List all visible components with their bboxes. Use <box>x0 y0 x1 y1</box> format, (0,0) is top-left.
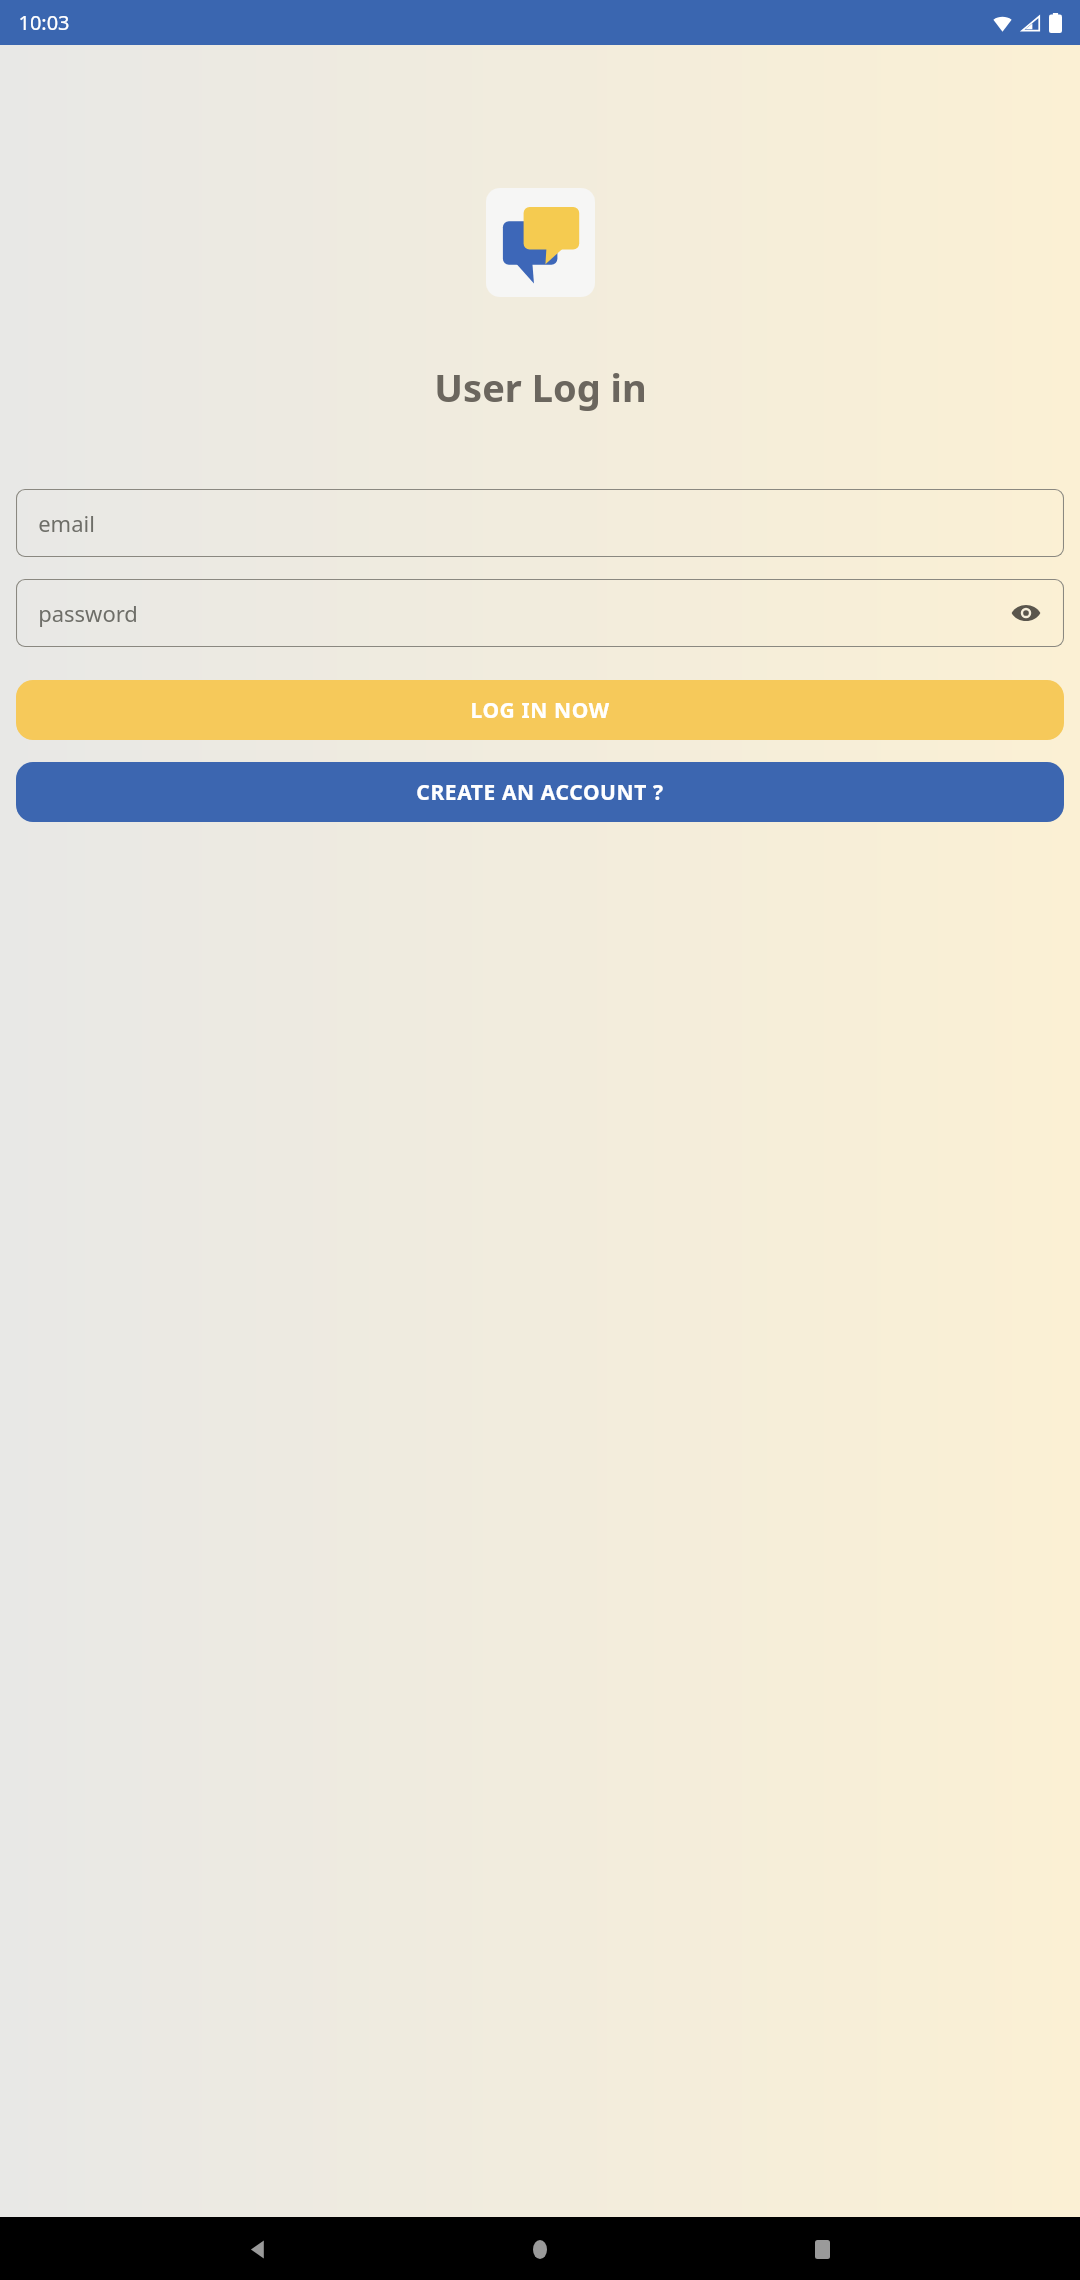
button[interactable]: CREATE AN ACCOUNT ? <box>16 762 1064 822</box>
button[interactable]: password <box>16 579 1064 647</box>
button[interactable]: Show password <box>1004 591 1048 635</box>
staticText: 10:03 <box>18 9 70 36</box>
staticText: LOG IN NOW <box>470 696 610 725</box>
staticText: User Log in <box>434 361 647 413</box>
button[interactable]: Recents <box>798 2225 846 2273</box>
button[interactable]: email <box>16 489 1064 557</box>
staticText: password <box>38 598 138 628</box>
button[interactable]: LOG IN NOW <box>16 680 1064 740</box>
button[interactable]: Back <box>234 2225 282 2273</box>
staticText: email <box>38 508 95 538</box>
button[interactable]: Home <box>516 2225 564 2273</box>
staticText: CREATE AN ACCOUNT ? <box>416 778 664 807</box>
